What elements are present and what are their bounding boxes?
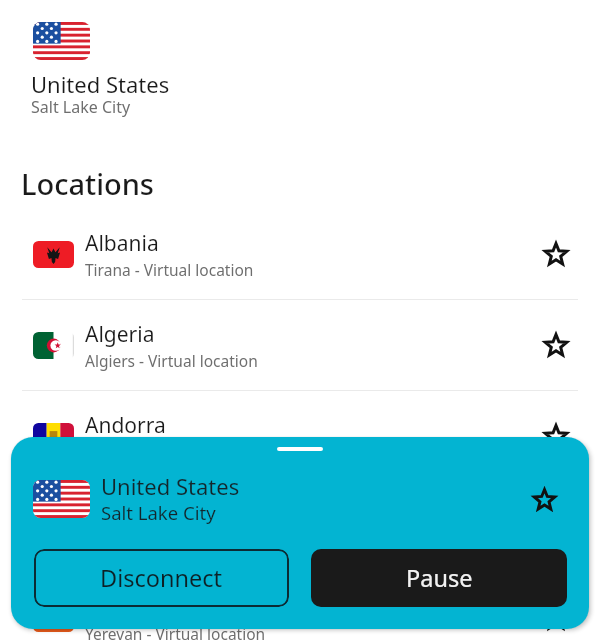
staticText: Salt Lake City [31, 96, 131, 118]
button[interactable]: Pause [311, 549, 567, 607]
button[interactable]: Favourite Andorra [534, 414, 578, 458]
staticText: Pause [406, 562, 473, 594]
staticText: United States [101, 471, 240, 501]
staticText: Armenia [85, 593, 169, 622]
button[interactable]: Andorra [0, 391, 600, 482]
button[interactable]: Favourite Angola [534, 505, 578, 549]
staticText: Tirana - Virtual location [85, 259, 254, 280]
staticText: Yerevan - Virtual location [85, 623, 266, 642]
button[interactable]: Angola [0, 482, 600, 573]
button[interactable]: Albania [0, 209, 600, 300]
button[interactable]: Armenia [0, 573, 600, 642]
staticText: Algeria [85, 320, 155, 349]
staticText: Disconnect [100, 562, 223, 594]
staticText: Andorra la Vella - Virtual location [85, 441, 323, 462]
button[interactable]: Favourite Armenia [534, 596, 578, 640]
button[interactable]: Disconnect [34, 549, 289, 607]
staticText: Algiers - Virtual location [85, 350, 258, 371]
staticText: Albania [85, 229, 159, 258]
button[interactable]: Favourite Algeria [534, 323, 578, 367]
button[interactable]: Favourite Albania [534, 232, 578, 276]
staticText: Locations [21, 164, 154, 203]
button[interactable]: Algeria [0, 300, 600, 391]
staticText: Salt Lake City [101, 500, 216, 525]
staticText: Angola [85, 502, 155, 531]
button[interactable]: Favourite United States [524, 479, 564, 519]
staticText: Luanda - Virtual location [85, 532, 262, 553]
staticText: United States [31, 69, 170, 99]
staticText: Andorra [85, 411, 166, 440]
button[interactable]: United States [11, 437, 589, 629]
